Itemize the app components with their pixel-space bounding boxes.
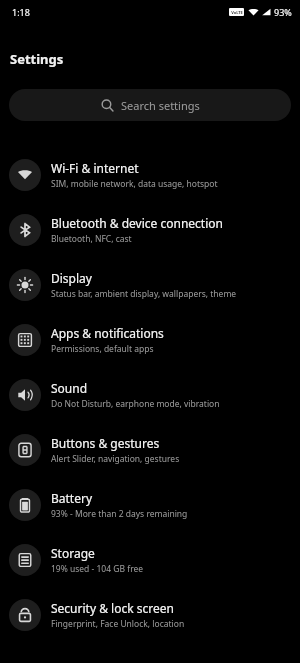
staticText: Search settings (121, 98, 200, 113)
staticText: Wi-Fi & internet (51, 160, 139, 176)
staticText: SIM, mobile network, data usage, hotspot (51, 178, 218, 190)
staticText: 1:18 (12, 6, 30, 18)
button[interactable]: Sound (0, 367, 300, 422)
staticText: Fingerprint, Face Unlock, location (51, 618, 185, 630)
staticText: Apps & notifications (51, 325, 164, 341)
staticText: Settings (10, 50, 64, 68)
staticText: Do Not Disturb, earphone mode, vibration (51, 398, 220, 410)
staticText: Permissions, default apps (51, 343, 154, 355)
button[interactable]: Buttons & gestures (0, 422, 300, 477)
button[interactable]: Bluetooth & device connection (0, 202, 300, 257)
staticText: Bluetooth, NFC, cast (51, 233, 132, 245)
button[interactable]: Apps & notifications (0, 312, 300, 367)
button[interactable]: Battery (0, 477, 300, 532)
staticText: 93% (274, 6, 292, 18)
button[interactable]: Display (0, 257, 300, 312)
staticText: Sound (51, 380, 88, 396)
staticText: Buttons & gestures (51, 435, 160, 451)
staticText: Status bar, ambient display, wallpapers,… (51, 288, 237, 300)
staticText: 93% - More than 2 days remaining (51, 508, 188, 520)
staticText: Security & lock screen (51, 600, 174, 616)
button[interactable]: Wi-Fi & internet (0, 147, 300, 202)
staticText: 19% used - 104 GB free (51, 563, 144, 575)
button[interactable]: Security & lock screen (0, 587, 300, 642)
button[interactable]: Search settings (9, 89, 291, 121)
staticText: Storage (51, 545, 95, 561)
staticText: Display (51, 270, 92, 286)
staticText: Alert Slider, navigation, gestures (51, 453, 180, 465)
staticText: Bluetooth & device connection (51, 215, 223, 231)
staticText: VoLTE (231, 10, 243, 15)
staticText: Battery (51, 490, 93, 506)
button[interactable]: Storage (0, 532, 300, 587)
